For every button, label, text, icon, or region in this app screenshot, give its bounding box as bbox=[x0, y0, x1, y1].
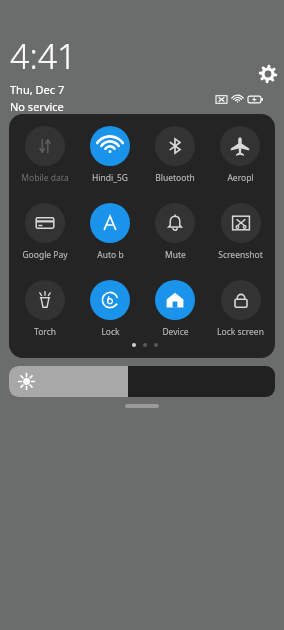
button[interactable]: Bluetooth bbox=[144, 126, 206, 192]
staticText: Bluetooth bbox=[155, 172, 195, 184]
button[interactable]: Mute bbox=[144, 203, 206, 269]
staticText: Device bbox=[162, 326, 189, 338]
button[interactable]: Auto b bbox=[79, 203, 141, 269]
button[interactable]: Settings bbox=[258, 64, 278, 84]
staticText: No service bbox=[10, 99, 64, 114]
button[interactable]: Aeropl bbox=[209, 126, 271, 192]
staticText: Torch bbox=[34, 326, 56, 338]
staticText: Google Pay bbox=[22, 249, 68, 261]
staticText: Lock bbox=[101, 326, 120, 338]
staticText: Thu, Dec 7 bbox=[10, 82, 65, 97]
staticText: Screenshot bbox=[218, 249, 263, 261]
button[interactable]: Google Pay bbox=[14, 203, 76, 269]
button[interactable]: Lock bbox=[79, 280, 141, 346]
button[interactable]: Device bbox=[144, 280, 206, 346]
staticText: Hindi_5G bbox=[92, 172, 128, 184]
staticText: Auto b bbox=[97, 249, 124, 261]
staticText: Mute bbox=[165, 249, 186, 261]
staticText: 4:41 bbox=[10, 33, 77, 79]
button[interactable]: Screenshot bbox=[209, 203, 271, 269]
button[interactable]: Torch bbox=[14, 280, 76, 346]
button[interactable]: Hindi_5G bbox=[79, 126, 141, 192]
staticText: Aeropl bbox=[227, 172, 254, 184]
staticText: Lock screen bbox=[217, 326, 264, 338]
button[interactable]: Brightness bbox=[9, 366, 275, 397]
button[interactable]: Mobile data bbox=[14, 126, 76, 192]
button[interactable]: Lock screen bbox=[209, 280, 271, 346]
staticText: Mobile data bbox=[21, 172, 69, 184]
